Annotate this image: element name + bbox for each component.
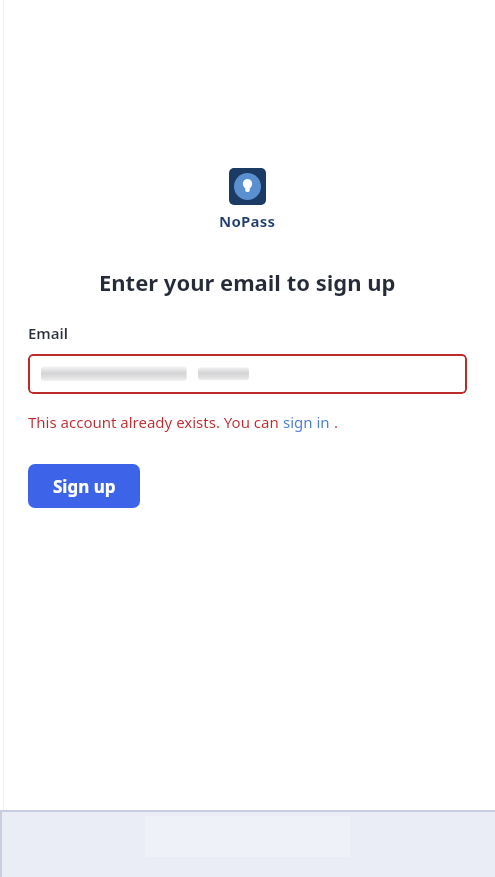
button[interactable]: Email address input xyxy=(28,354,467,394)
staticText: Email xyxy=(28,323,69,343)
staticText: This account already exists. You can xyxy=(28,412,283,432)
staticText: NoPass xyxy=(219,211,276,231)
staticText: sign in xyxy=(283,412,330,432)
staticText: Enter your email to sign up xyxy=(99,267,396,297)
button[interactable]: sign in xyxy=(283,412,330,432)
staticText: Sign up xyxy=(53,475,116,498)
button[interactable]: Sign up xyxy=(28,464,140,508)
staticText: . xyxy=(330,412,338,432)
